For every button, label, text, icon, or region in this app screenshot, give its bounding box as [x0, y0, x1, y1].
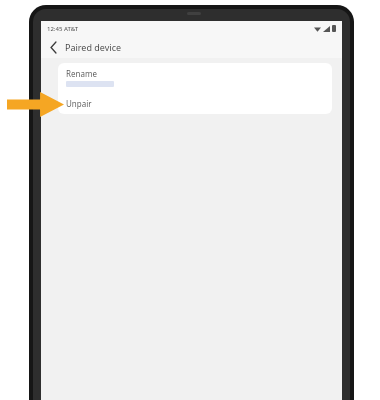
staticText: Unpair — [66, 98, 92, 109]
button[interactable]: Unpair — [58, 92, 332, 114]
button[interactable]: Back — [44, 38, 62, 56]
staticText: 12:45 AT&T — [47, 25, 79, 33]
staticText: Paired device — [65, 41, 122, 53]
button[interactable]: Rename — [58, 63, 332, 92]
other: Annotation arrow pointing to Unpair — [7, 92, 64, 117]
staticText: Rename — [66, 68, 97, 79]
